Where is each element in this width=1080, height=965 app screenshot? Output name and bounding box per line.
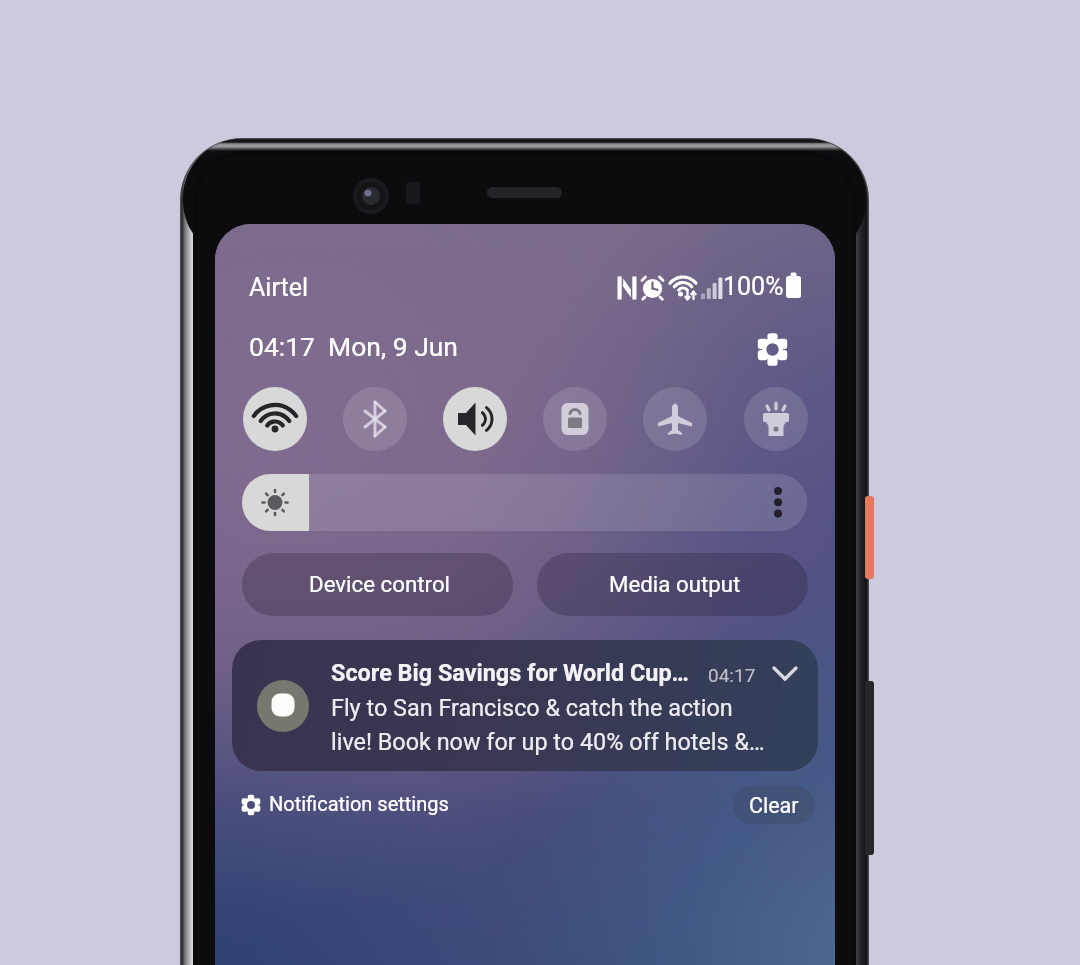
staticText: 100% bbox=[723, 272, 784, 301]
staticText: Mon, 9 Jun bbox=[328, 331, 459, 362]
staticText: 04:17 bbox=[249, 331, 315, 362]
button[interactable]: Sound bbox=[443, 387, 507, 451]
staticText: live! Book now for up to 40% off hotels … bbox=[331, 728, 765, 755]
staticText: Score Big Savings for World Cup… bbox=[331, 659, 689, 686]
button[interactable]: Expand notification bbox=[765, 653, 805, 693]
staticText: Notification settings bbox=[269, 792, 449, 815]
button[interactable]: Brightness bbox=[242, 474, 807, 531]
button[interactable]: Device control bbox=[242, 553, 513, 616]
button[interactable]: Airplane mode bbox=[643, 387, 707, 451]
button[interactable]: Clear bbox=[733, 786, 815, 824]
staticText: Media output bbox=[609, 571, 741, 597]
staticText: Airtel bbox=[249, 273, 308, 302]
button[interactable]: Media output bbox=[537, 553, 808, 616]
button[interactable]: Notification settings bbox=[238, 784, 458, 826]
staticText: Fly to San Francisco & catch the action bbox=[331, 694, 733, 721]
button[interactable]: More settings bbox=[760, 474, 807, 531]
staticText: Clear bbox=[749, 793, 799, 818]
staticText: Device control bbox=[309, 571, 451, 597]
button[interactable]: Flashlight bbox=[744, 387, 808, 451]
button[interactable]: Bluetooth bbox=[343, 387, 407, 451]
button[interactable]: Screen lock bbox=[543, 387, 607, 451]
button[interactable]: Score Big Savings for World Cup… bbox=[232, 640, 818, 771]
staticText: 04:17 bbox=[708, 664, 756, 686]
button[interactable]: Wi-Fi bbox=[243, 387, 307, 451]
button[interactable]: Settings bbox=[750, 327, 794, 371]
